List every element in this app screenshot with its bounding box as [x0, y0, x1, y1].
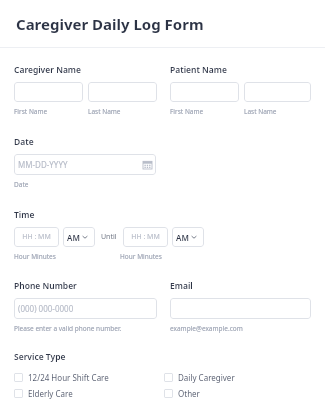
button[interactable] [170, 82, 239, 102]
staticText: First Name [14, 107, 83, 116]
staticText: AM [67, 232, 80, 243]
staticText: Last Name [244, 107, 311, 116]
button[interactable] [88, 82, 157, 102]
staticText: MM-DD-YYYY [18, 159, 143, 170]
staticText: example@example.com [170, 324, 243, 333]
button[interactable] [14, 82, 83, 102]
staticText: Phone Number [14, 280, 77, 292]
staticText: 12/24 Hour Shift Care [28, 372, 109, 383]
button[interactable]: HH : MM [14, 227, 59, 247]
button[interactable] [244, 82, 311, 102]
staticText: Patient Name [170, 64, 227, 76]
button[interactable]: Daily Caregiver [164, 370, 235, 384]
staticText: Date [14, 180, 29, 189]
staticText: Date [14, 136, 34, 148]
staticText: Time [14, 209, 35, 221]
staticText: HH : MM [18, 232, 55, 242]
staticText: (000) 000-0000 [18, 303, 153, 314]
staticText: HH : MM [127, 232, 164, 242]
button[interactable] [170, 298, 311, 319]
staticText: Hour Minutes [120, 252, 162, 261]
staticText: Daily Caregiver [178, 372, 235, 383]
button[interactable]: AM [172, 227, 204, 247]
staticText: Caregiver Daily Log Form [16, 14, 204, 34]
staticText: Email [170, 280, 193, 292]
button[interactable]: AM [63, 227, 95, 247]
staticText: Until [101, 232, 117, 242]
staticText: Caregiver Name [14, 64, 81, 76]
button[interactable]: (000) 000-0000 [14, 298, 157, 319]
staticText: Hour Minutes [14, 252, 120, 261]
staticText: Other [178, 388, 200, 399]
staticText: Last Name [88, 107, 157, 116]
staticText: First Name [170, 107, 239, 116]
other: Open calendar [143, 160, 152, 169]
staticText: Please enter a valid phone number. [14, 324, 122, 333]
staticText: Elderly Care [28, 388, 73, 399]
button[interactable]: Elderly Care [14, 386, 73, 400]
button[interactable]: Other [164, 386, 200, 400]
button[interactable]: MM-DD-YYYY [14, 154, 156, 175]
button[interactable]: 12/24 Hour Shift Care [14, 370, 109, 384]
button[interactable]: HH : MM [123, 227, 168, 247]
staticText: Service Type [14, 351, 66, 363]
staticText: AM [176, 232, 189, 243]
